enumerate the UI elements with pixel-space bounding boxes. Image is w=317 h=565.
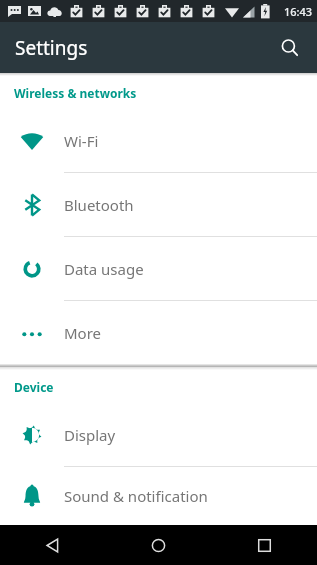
staticText: Bluetooth (64, 195, 134, 215)
staticText: Sound & notification (64, 486, 208, 506)
button[interactable]: Recent apps (211, 525, 317, 565)
staticText: Wireless & networks (14, 85, 137, 101)
staticText: Data usage (64, 259, 144, 279)
button[interactable]: More (0, 301, 317, 364)
button[interactable]: Sound & notification (0, 467, 317, 525)
staticText: 16:43 (284, 4, 313, 19)
button[interactable]: Back (0, 525, 105, 565)
button[interactable]: Data usage (0, 237, 317, 300)
button[interactable]: Display (0, 403, 317, 466)
staticText: Device (14, 379, 54, 395)
staticText: More (64, 323, 102, 343)
button[interactable]: Wi-Fi (0, 109, 317, 172)
staticText: Settings (15, 35, 88, 61)
button[interactable]: Bluetooth (0, 173, 317, 236)
staticText: Wi-Fi (64, 131, 99, 151)
button[interactable]: Search (269, 27, 311, 69)
button[interactable]: Home (105, 525, 211, 565)
staticText: Display (64, 425, 116, 445)
